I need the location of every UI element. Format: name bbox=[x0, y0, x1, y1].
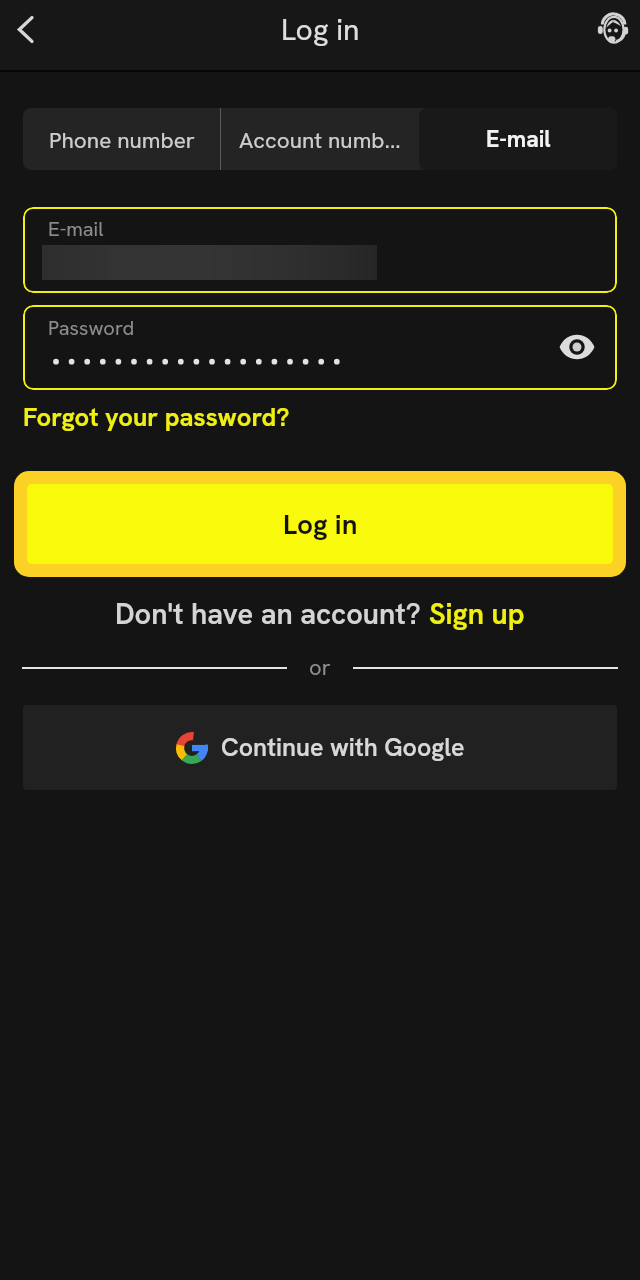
staticText: Continue with Google bbox=[221, 731, 465, 764]
button[interactable]: Password bbox=[23, 305, 617, 390]
button[interactable]: Sign up bbox=[429, 595, 525, 633]
button[interactable]: Account numb... bbox=[221, 108, 419, 170]
staticText: or bbox=[309, 653, 331, 682]
staticText: Phone number bbox=[49, 125, 195, 154]
button[interactable]: Continue with Google bbox=[23, 705, 617, 790]
staticText: E-mail bbox=[486, 124, 551, 154]
staticText: Account numb... bbox=[239, 125, 401, 154]
button[interactable]: Log in bbox=[14, 471, 626, 577]
staticText: E-mail bbox=[48, 216, 104, 242]
button[interactable]: Show password bbox=[553, 323, 601, 371]
staticText: Don't have an account? bbox=[115, 595, 429, 633]
staticText: Sign up bbox=[429, 595, 525, 633]
staticText: Log in bbox=[283, 506, 358, 542]
button[interactable]: Phone number bbox=[23, 108, 220, 170]
button[interactable]: Customer support bbox=[589, 5, 637, 53]
button[interactable]: Back bbox=[1, 5, 49, 53]
button[interactable]: Forgot your password? bbox=[21, 398, 292, 435]
button[interactable]: E-mail bbox=[419, 108, 617, 170]
staticText: Password bbox=[48, 315, 135, 341]
button[interactable]: E-mail bbox=[23, 207, 617, 293]
staticText: Log in bbox=[281, 10, 360, 49]
staticText: Forgot your password? bbox=[23, 400, 290, 433]
